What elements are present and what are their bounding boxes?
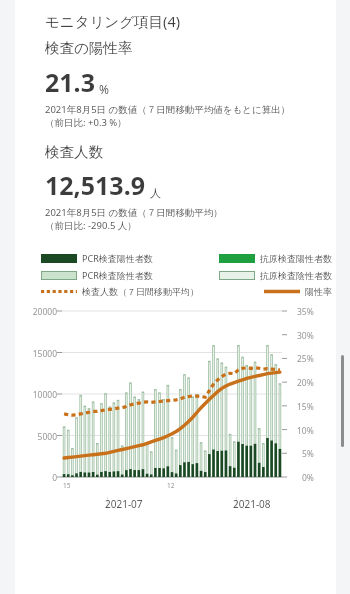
staticText: 15 <box>63 481 71 490</box>
button[interactable]: PCR検査陽性者数 <box>41 252 332 264</box>
staticText: 15% <box>297 401 314 413</box>
staticText: 検査の陽性率 <box>45 39 133 57</box>
staticText: PCR検査陰性者数 <box>82 269 153 281</box>
staticText: 人 <box>150 186 161 200</box>
staticText: 35% <box>297 306 314 318</box>
staticText: PCR検査陽性者数 <box>82 252 153 264</box>
staticText: 30% <box>297 330 314 342</box>
staticText: 2021年8月5日 の数値（７日間移動平均） <box>45 206 223 219</box>
staticText: モニタリング項目(4) <box>45 11 181 31</box>
staticText: 5000 <box>15 431 57 443</box>
staticText: % <box>99 81 109 97</box>
staticText: 2021-08 <box>233 497 271 510</box>
staticText: 2021-07 <box>105 497 143 510</box>
staticText: 10000 <box>15 389 57 401</box>
button[interactable]: 検査人数（７日間移動平均） <box>41 286 332 297</box>
staticText: 15000 <box>15 348 57 360</box>
staticText: 0% <box>302 472 314 484</box>
staticText: 抗原検査陽性者数 <box>260 253 332 264</box>
staticText: 12,513.9 <box>45 168 145 202</box>
staticText: 25% <box>297 353 314 365</box>
staticText: 陽性率 <box>305 286 332 297</box>
staticText: （前日比: -290.5 人） <box>45 219 137 232</box>
staticText: 21.3 <box>45 65 95 99</box>
staticText: 20000 <box>15 306 57 318</box>
staticText: 0 <box>15 472 57 484</box>
staticText: 5% <box>302 448 314 460</box>
button[interactable]: PCR検査陰性者数 <box>41 269 332 281</box>
staticText: 12 <box>167 481 175 490</box>
staticText: （前日比: +0.3 %） <box>45 116 127 129</box>
staticText: 10% <box>297 425 314 437</box>
staticText: 20% <box>297 377 314 389</box>
staticText: 検査人数（７日間移動平均） <box>82 286 199 297</box>
staticText: 抗原検査陰性者数 <box>260 270 332 281</box>
staticText: 2021年8月5日 の数値（７日間移動平均値をもとに算出） <box>45 103 291 116</box>
staticText: 検査人数 <box>45 143 103 161</box>
